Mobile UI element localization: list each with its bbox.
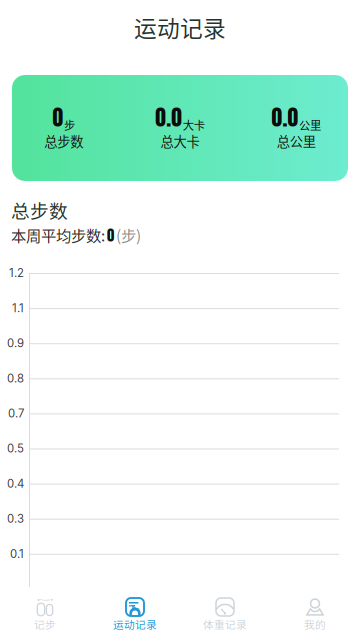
staticText: 0.1	[10, 547, 24, 561]
staticText: 我的	[304, 616, 326, 632]
staticText: 总步数	[11, 196, 68, 223]
staticText: 总公里	[277, 131, 316, 151]
staticText: 0.0	[155, 101, 182, 133]
staticText: 公里	[299, 117, 321, 133]
staticText: 记步	[34, 616, 56, 632]
staticText: 大卡	[183, 117, 205, 133]
button[interactable]: 记步	[0, 589, 90, 640]
staticText: 1.1	[12, 301, 24, 315]
staticText: 0.7	[8, 406, 24, 420]
staticText: 0.0	[272, 101, 299, 133]
staticText: 运动记录	[113, 616, 157, 632]
staticText: 0.5	[7, 442, 24, 455]
button[interactable]: 运动记录	[90, 589, 180, 640]
staticText: 体重记录	[203, 616, 247, 632]
staticText: (步)	[116, 224, 141, 246]
staticText: 0	[52, 101, 63, 133]
staticText: 0.9	[7, 336, 24, 350]
staticText: 总步数	[44, 131, 83, 151]
button[interactable]: 体重记录	[180, 589, 270, 640]
staticText: 0	[107, 224, 114, 246]
staticText: 本周平均步数:	[11, 224, 105, 246]
staticText: 0.8	[7, 371, 24, 385]
staticText: 总大卡	[160, 131, 199, 151]
staticText: 步	[64, 117, 75, 133]
staticText: 1.2	[9, 266, 24, 280]
button[interactable]: 我的	[270, 589, 360, 640]
staticText: 0.3	[7, 512, 24, 525]
staticText: 0.4	[7, 477, 24, 490]
staticText: 运动记录	[134, 11, 226, 43]
